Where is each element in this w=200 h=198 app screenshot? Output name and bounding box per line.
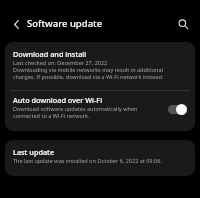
- button[interactable]: Auto download over Wi-Fi: [5, 91, 195, 131]
- button[interactable]: Navigate up: [5, 13, 27, 35]
- staticText: Software update: [27, 17, 103, 30]
- staticText: Download software updates automatically …: [13, 105, 161, 119]
- staticText: Last update: [13, 147, 55, 157]
- button[interactable]: Last update: [5, 140, 195, 176]
- button[interactable]: Search: [172, 13, 194, 35]
- button[interactable]: Auto download over Wi-Fi: [168, 104, 187, 115]
- button[interactable]: Download and install: [5, 42, 195, 90]
- staticText: Downloading via mobile networks may resu…: [13, 66, 183, 80]
- staticText: Last checked on: December 27, 2022: [13, 59, 108, 66]
- staticText: Download and install: [13, 49, 87, 59]
- staticText: The last update was installed on October…: [13, 157, 162, 164]
- staticText: Auto download over Wi-Fi: [13, 95, 103, 105]
